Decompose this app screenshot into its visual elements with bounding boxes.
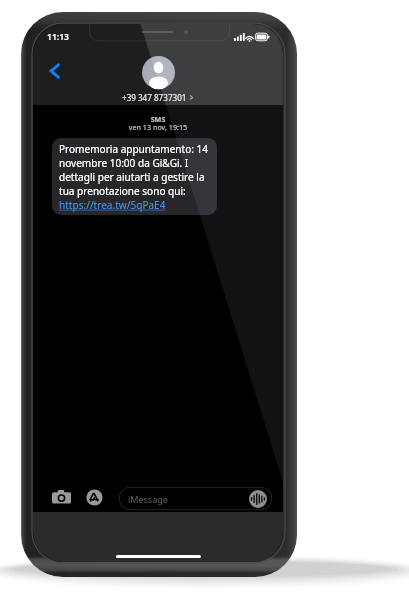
staticText: 11:13 — [47, 31, 70, 43]
staticText: Promemoria appuntamento: 14 novembre 10:… — [59, 142, 212, 198]
button[interactable]: App Store — [86, 489, 103, 506]
staticText: SMS — [33, 114, 283, 124]
button[interactable]: Audio message — [249, 490, 267, 508]
button[interactable]: Promemoria appuntamento: 14 novembre 10:… — [52, 138, 217, 215]
staticText: https://trea.tw/5qPaE4 — [59, 198, 166, 212]
button[interactable]: Back — [44, 59, 68, 83]
staticText: ven 13 nov, 19:15 — [33, 122, 283, 132]
button[interactable]: iMessage — [119, 487, 272, 510]
staticText: iMessage — [128, 493, 168, 505]
button[interactable]: +39 347 8737301 — [33, 56, 283, 100]
staticText: +39 347 8737301 — [122, 92, 187, 103]
button[interactable]: Camera — [52, 488, 71, 507]
